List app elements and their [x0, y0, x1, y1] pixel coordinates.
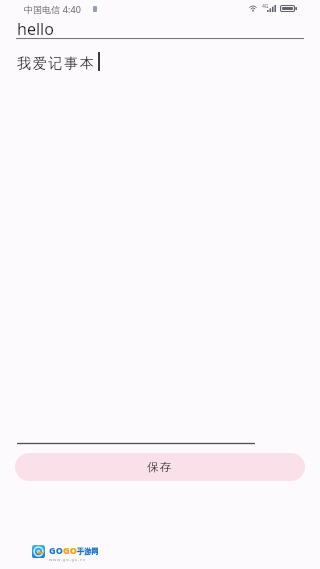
button[interactable]: 保存: [15, 453, 305, 481]
staticText: hello: [17, 18, 54, 40]
staticText: GO: [49, 544, 63, 556]
staticText: 保存: [147, 460, 174, 474]
button[interactable]: hello: [16, 17, 304, 39]
staticText: 我爱记事本: [17, 55, 96, 73]
other: GoGo logo: [32, 545, 45, 558]
staticText: 中国电信 4:40: [24, 3, 82, 15]
staticText: GO: [63, 544, 77, 556]
button[interactable]: 我爱记事本: [16, 46, 255, 444]
staticText: 4G: [262, 3, 269, 10]
other: Wi-Fi: [248, 5, 258, 12]
staticText: 手游网: [77, 547, 99, 556]
other: Mobile signal: [267, 5, 276, 12]
staticText: www.go-go.cn: [49, 557, 87, 563]
